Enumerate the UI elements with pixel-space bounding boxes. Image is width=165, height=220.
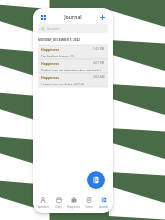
staticText: 4:07 PM — [93, 61, 105, 65]
staticText: Journal — [99, 205, 108, 209]
button[interactable]: Activities — [35, 194, 51, 211]
staticText: Lorem ipsum dolor 😀😊😍 — [41, 82, 85, 85]
staticText: Stress — [85, 205, 93, 209]
other: Happiness — [70, 196, 78, 204]
button[interactable]: Happiness — [38, 45, 108, 59]
staticText: 1:22 PM — [93, 47, 105, 51]
other: Stress — [85, 196, 93, 204]
staticText: MONDAY, DECEMBER 5, 2022 — [38, 38, 80, 42]
other: Journal — [100, 196, 108, 204]
button[interactable]: Search — [38, 24, 108, 33]
staticText: Happiness — [41, 61, 60, 66]
staticText: Happiness — [67, 205, 80, 209]
staticText: Search — [47, 26, 60, 31]
button[interactable]: Daily — [51, 194, 66, 211]
button[interactable]: Happiness — [66, 194, 81, 211]
staticText: Today was an amazing day, we had a gr… — [41, 68, 105, 71]
button[interactable]: Happiness — [38, 59, 108, 73]
staticText: Happiness — [41, 75, 60, 80]
staticText: 2:04 AM — [93, 75, 105, 79]
staticText: Happiness — [41, 47, 60, 52]
button[interactable]: Add entry — [98, 13, 107, 22]
staticText: I'm feeling happy 😊 — [41, 54, 74, 57]
staticText: Activities — [38, 205, 49, 209]
button[interactable]: Journal — [96, 194, 111, 211]
staticText: Daily — [55, 205, 62, 209]
staticText: Journal — [64, 14, 82, 21]
button[interactable]: Happiness — [38, 73, 108, 87]
button[interactable]: Stress — [81, 194, 96, 211]
button[interactable]: New journal entry — [87, 171, 105, 189]
button[interactable]: Menu — [39, 13, 48, 22]
other: Daily — [55, 196, 63, 204]
other: Activities — [39, 196, 47, 204]
